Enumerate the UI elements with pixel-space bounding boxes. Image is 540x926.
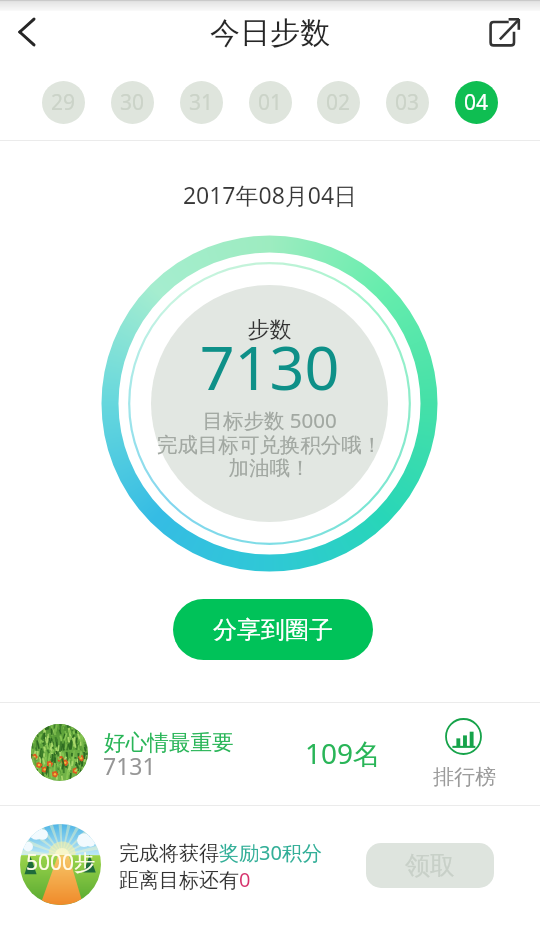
button[interactable]: 02 [317, 81, 360, 124]
button[interactable]: Back [0, 3, 57, 61]
staticText: 步数 [99, 316, 440, 344]
staticText: 7131 [103, 750, 156, 781]
staticText: 02 [326, 88, 351, 117]
staticText: 完成目标可兑换积分哦！ [99, 432, 440, 458]
staticText: 目标步数 5000 [99, 406, 440, 434]
staticText: 加油哦！ [99, 455, 440, 481]
staticText: 31 [189, 88, 214, 117]
staticText: 03 [395, 88, 420, 117]
staticText: 好心情最重要 [104, 729, 234, 756]
staticText: 109名 [305, 734, 382, 772]
button[interactable]: 03 [386, 81, 429, 124]
button[interactable]: 31 [180, 81, 223, 124]
staticText: 01 [258, 88, 283, 117]
staticText: 2017年08月04日 [0, 179, 540, 210]
button[interactable]: 领取 [366, 843, 494, 888]
staticText: 29 [51, 88, 76, 117]
staticText: 04 [464, 88, 489, 117]
button[interactable]: 04 [455, 81, 498, 124]
staticText: 7130 [99, 325, 440, 408]
staticText: 分享到圈子 [213, 615, 333, 645]
staticText: 今日步数 [210, 14, 330, 52]
staticText: 完成将获得奖励30积分 [119, 839, 322, 866]
button[interactable]: 01 [249, 81, 292, 124]
button[interactable]: 30 [111, 81, 154, 124]
staticText: 5000步 [26, 848, 96, 877]
button[interactable]: 29 [42, 81, 85, 124]
button[interactable]: Share [476, 2, 534, 60]
button[interactable]: 好心情最重要 [0, 703, 540, 805]
staticText: 排行榜 [433, 764, 496, 790]
button[interactable]: 排行榜 [423, 710, 503, 798]
staticText: 距离目标还有0 [119, 866, 251, 893]
staticText: 领取 [405, 850, 455, 881]
staticText: 30 [120, 88, 145, 117]
button[interactable]: 分享到圈子 [173, 599, 373, 660]
